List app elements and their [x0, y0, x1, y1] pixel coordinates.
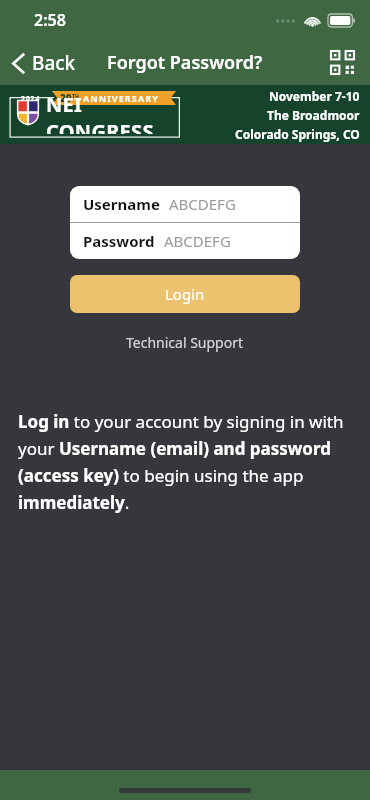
staticText: ABCDEFG — [164, 231, 231, 251]
staticText: Login — [165, 284, 205, 304]
staticText: Password — [83, 231, 155, 251]
button[interactable]: Back — [5, 45, 83, 81]
staticText: Back — [32, 50, 76, 76]
button[interactable]: Technical Support — [116, 329, 254, 356]
staticText: TH — [72, 93, 79, 100]
button[interactable]: Password — [70, 223, 300, 259]
staticText: Log in to your account by signing in wit… — [18, 410, 352, 514]
staticText: NEI CONGRESS — [46, 91, 182, 134]
button[interactable]: Login — [70, 275, 300, 313]
staticText: The Broadmoor — [267, 107, 360, 123]
staticText: 2:58 — [34, 9, 66, 31]
button[interactable]: Scan QR code — [327, 47, 358, 78]
staticText: 2024 — [21, 94, 41, 104]
staticText: ANNIVERSARY — [83, 92, 159, 104]
button[interactable]: Username — [70, 186, 300, 222]
staticText: November 7-10 — [269, 88, 360, 104]
staticText: Technical Support — [126, 333, 244, 352]
staticText: 20 — [60, 91, 72, 105]
staticText: ABCDEFG — [169, 194, 236, 214]
staticText: Forgot Password? — [107, 50, 263, 75]
staticText: Username — [83, 194, 160, 214]
staticText: Colorado Springs, CO — [235, 126, 360, 142]
